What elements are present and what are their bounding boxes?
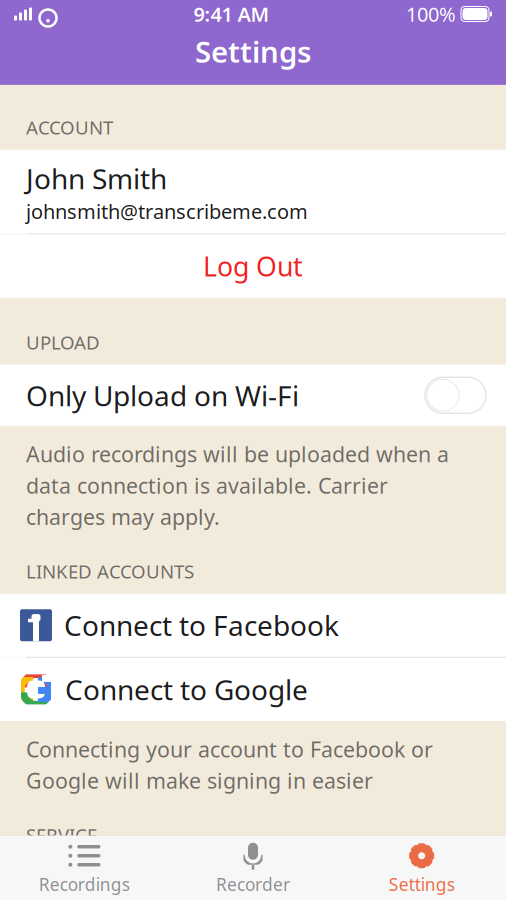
staticText: Connect to Facebook: [64, 607, 339, 644]
button[interactable]: John Smith: [0, 150, 506, 233]
staticText: Log Out: [203, 248, 303, 284]
staticText: johnsmith@transcribeme.com: [26, 198, 308, 224]
staticText: ACCOUNT: [26, 115, 113, 140]
staticText: Only Upload on Wi-Fi: [26, 377, 299, 414]
button[interactable]: Recordings: [0, 836, 169, 900]
button[interactable]: Visit Website: [0, 857, 506, 900]
staticText: LINKED ACCOUNTS: [26, 559, 194, 584]
staticText: Connect to Google: [65, 671, 308, 708]
staticText: Connecting your account to Facebook or G…: [26, 735, 433, 795]
staticText: John Smith: [26, 160, 167, 197]
button[interactable]: Recorder: [169, 836, 337, 900]
staticText: UPLOAD: [26, 330, 100, 355]
staticText: Settings: [195, 32, 311, 71]
staticText: 9:41 AM: [193, 1, 269, 27]
button[interactable]: Connect to Google: [0, 658, 506, 721]
button[interactable]: Only Upload on Wi-Fi: [0, 365, 506, 426]
staticText: Recorder: [216, 873, 290, 896]
button[interactable]: Log Out: [0, 234, 506, 298]
staticText: Recordings: [39, 873, 130, 896]
staticText: 100%: [406, 1, 456, 27]
staticText: Visit Website: [173, 871, 333, 900]
staticText: SERVICE: [26, 823, 97, 847]
staticText: Settings: [389, 873, 455, 896]
staticText: Audio recordings will be uploaded when a…: [26, 440, 449, 531]
button[interactable]: Settings: [337, 836, 506, 900]
button[interactable]: Connect to Facebook: [0, 594, 506, 657]
